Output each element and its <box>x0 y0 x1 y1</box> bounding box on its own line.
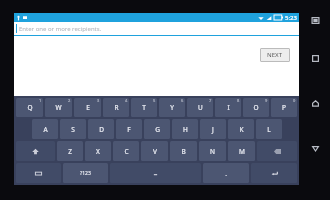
button[interactable]: V <box>141 141 168 161</box>
button[interactable]: Enter <box>251 163 297 183</box>
button[interactable]: Space <box>110 163 201 183</box>
staticText: C <box>124 147 129 156</box>
staticText: NEXT <box>267 51 283 59</box>
button[interactable]: Home <box>307 95 323 111</box>
staticText: Y <box>170 103 174 112</box>
staticText: A <box>43 125 48 134</box>
staticText: N <box>210 147 215 156</box>
button[interactable]: Recents <box>307 50 323 66</box>
button[interactable]: ?123 <box>63 163 108 183</box>
button[interactable]: N <box>199 141 226 161</box>
staticText: X <box>96 147 100 156</box>
staticText: E <box>86 103 90 112</box>
button[interactable]: S <box>60 119 86 139</box>
button[interactable]: O <box>243 98 269 117</box>
staticText: V <box>153 147 157 156</box>
button[interactable]: Back <box>307 140 323 156</box>
button[interactable]: G <box>144 119 170 139</box>
button[interactable]: J <box>200 119 226 139</box>
staticText: K <box>239 125 244 134</box>
staticText: 6 <box>181 98 184 103</box>
staticText: U <box>198 103 203 112</box>
staticText: 5:23 <box>285 14 297 22</box>
button[interactable]: B <box>170 141 197 161</box>
staticText: Enter one or more recipients. <box>19 25 102 33</box>
staticText: 0 <box>293 98 296 103</box>
button[interactable]: NEXT <box>260 48 290 62</box>
button[interactable]: P <box>271 98 297 117</box>
staticText: 2 <box>68 98 71 103</box>
staticText: Q <box>27 103 33 112</box>
staticText: 9 <box>265 98 268 103</box>
button[interactable]: . <box>203 163 249 183</box>
staticText: ?123 <box>80 170 91 177</box>
staticText: 8 <box>237 98 240 103</box>
button[interactable]: U <box>187 98 213 117</box>
staticText: M <box>239 147 245 156</box>
button[interactable]: T <box>131 98 157 117</box>
button[interactable]: M <box>228 141 255 161</box>
button[interactable]: D <box>88 119 114 139</box>
staticText: 3 <box>97 98 100 103</box>
button[interactable]: Screenshot <box>307 12 323 28</box>
button[interactable]: E <box>74 98 101 117</box>
staticText: F <box>127 125 131 134</box>
staticText: B <box>181 147 186 156</box>
staticText: 5 <box>153 98 156 103</box>
staticText: O <box>253 103 259 112</box>
staticText: S <box>71 125 75 134</box>
button[interactable]: R <box>103 98 129 117</box>
staticText: 1 <box>39 98 42 103</box>
button[interactable]: Shift <box>16 141 55 161</box>
button[interactable]: K <box>228 119 254 139</box>
staticText: I <box>227 103 230 112</box>
staticText: Z <box>68 147 72 156</box>
staticText: T <box>142 103 146 112</box>
staticText: 4 <box>125 98 128 103</box>
staticText: L <box>267 125 271 134</box>
button[interactable]: L <box>256 119 282 139</box>
button[interactable]: Q <box>16 98 43 117</box>
staticText: H <box>183 125 188 134</box>
button[interactable]: C <box>113 141 139 161</box>
button[interactable]: Enter one or more recipients. <box>14 22 299 35</box>
staticText: P <box>282 103 286 112</box>
staticText: W <box>55 103 62 112</box>
button[interactable]: X <box>85 141 111 161</box>
button[interactable]: Delete <box>257 141 297 161</box>
button[interactable]: I <box>215 98 241 117</box>
button[interactable]: W <box>45 98 72 117</box>
staticText: G <box>155 125 160 134</box>
staticText: D <box>99 125 104 134</box>
staticText: . <box>225 169 227 178</box>
button[interactable]: Switch keyboard <box>16 163 61 183</box>
staticText: J <box>212 125 214 134</box>
staticText: R <box>114 103 119 112</box>
button[interactable]: F <box>116 119 142 139</box>
staticText: 7 <box>209 98 212 103</box>
button[interactable]: Z <box>57 141 83 161</box>
button[interactable]: Y <box>159 98 185 117</box>
button[interactable]: A <box>32 119 58 139</box>
button[interactable]: H <box>172 119 198 139</box>
